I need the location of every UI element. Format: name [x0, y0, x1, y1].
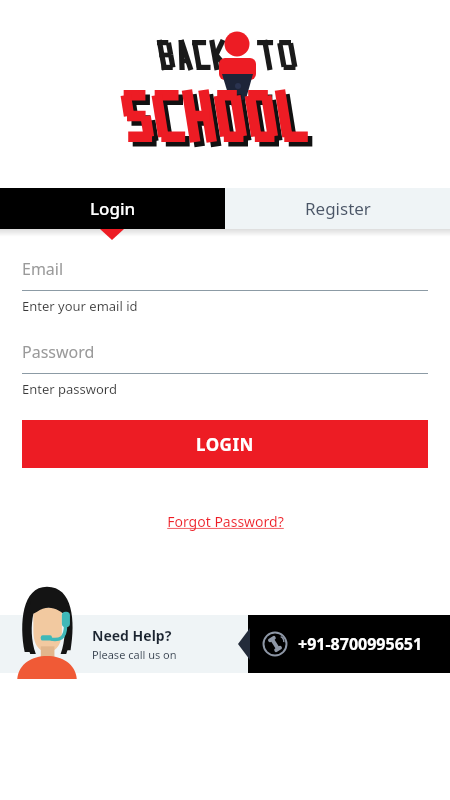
staticText: +91-8700995651: [298, 633, 423, 655]
staticText: Password: [22, 341, 95, 363]
button[interactable]: Login: [0, 188, 225, 229]
button[interactable]: Email: [22, 258, 428, 315]
button[interactable]: Register: [225, 188, 450, 229]
other: Call: [262, 631, 288, 657]
button[interactable]: Password: [22, 341, 428, 398]
button[interactable]: LOGIN: [22, 420, 428, 468]
button[interactable]: Forgot Password?: [167, 512, 284, 531]
staticText: Need Help?: [92, 626, 172, 645]
staticText: Login: [90, 197, 136, 220]
staticText: Forgot Password?: [167, 512, 284, 531]
staticText: Email: [22, 258, 64, 280]
staticText: Enter your email id: [22, 297, 138, 315]
staticText: Enter password: [22, 380, 117, 398]
staticText: Register: [305, 197, 371, 220]
staticText: LOGIN: [196, 433, 254, 456]
button[interactable]: Call: [248, 615, 450, 673]
staticText: Please call us on: [92, 647, 177, 662]
